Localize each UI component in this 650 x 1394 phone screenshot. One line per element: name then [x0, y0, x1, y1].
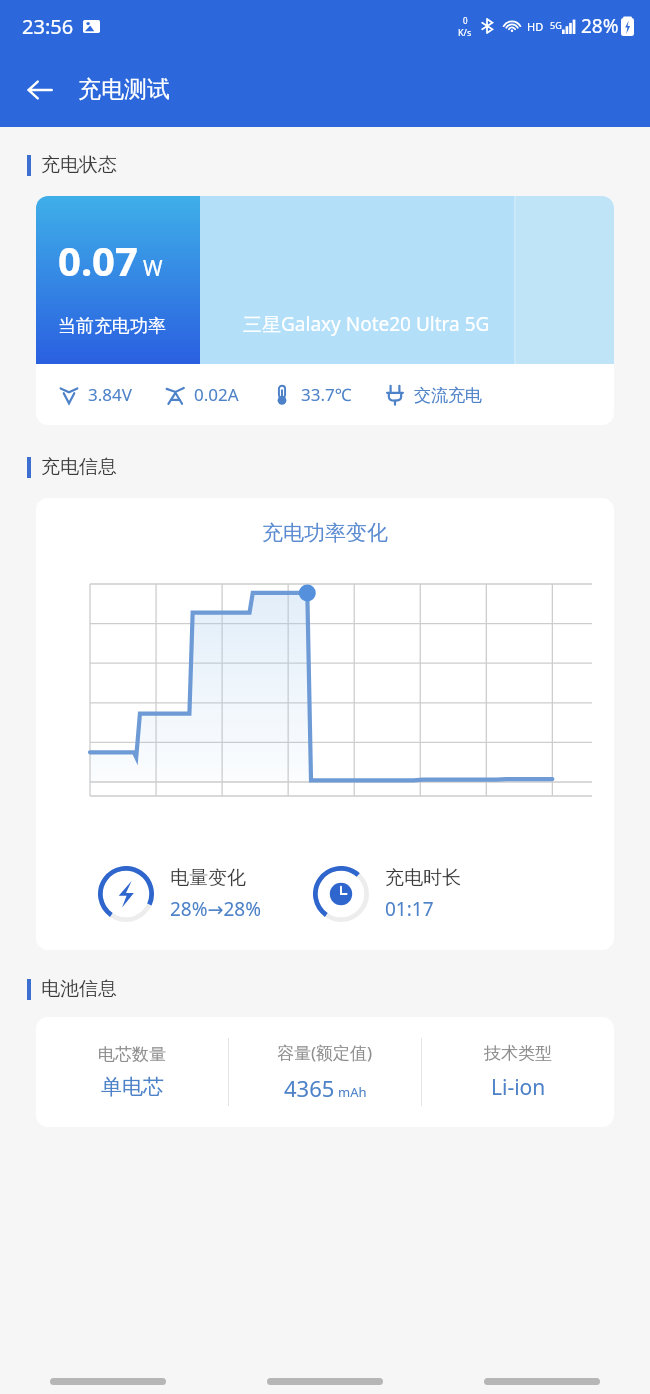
- staticText: 电芯数量: [98, 1044, 166, 1065]
- staticText: 23:56: [22, 13, 74, 40]
- button[interactable]: 导航按钮: [216, 1355, 433, 1394]
- button[interactable]: 充电时长: [313, 866, 461, 922]
- staticText: 电池信息: [41, 977, 117, 1001]
- staticText: 28%→28%: [170, 896, 261, 922]
- button[interactable]: 返回: [14, 64, 66, 116]
- staticText: W: [143, 254, 163, 283]
- staticText: 充电时长: [385, 866, 461, 890]
- staticText: 充电信息: [41, 455, 117, 479]
- staticText: 5G: [550, 19, 562, 31]
- staticText: 电量变化: [170, 866, 246, 890]
- staticText: K/s: [458, 26, 472, 38]
- staticText: 3.84V: [88, 383, 132, 406]
- staticText: 充电功率变化: [36, 520, 614, 546]
- button[interactable]: 电量变化: [98, 866, 261, 922]
- staticText: 单电芯: [101, 1074, 164, 1100]
- button[interactable]: 导航按钮: [433, 1355, 650, 1394]
- staticText: 技术类型: [484, 1043, 552, 1064]
- staticText: 容量(额定值): [277, 1041, 373, 1064]
- staticText: 充电状态: [41, 153, 117, 177]
- button[interactable]: 充电功率变化: [36, 498, 614, 950]
- staticText: HD: [527, 19, 544, 34]
- staticText: 当前充电功率: [58, 315, 166, 338]
- button[interactable]: 0.07: [36, 196, 614, 425]
- staticText: mAh: [338, 1083, 367, 1101]
- button[interactable]: 导航按钮: [0, 1355, 216, 1394]
- staticText: 交流充电: [414, 385, 482, 406]
- staticText: 28%: [581, 13, 619, 39]
- staticText: 充电测试: [78, 75, 170, 104]
- staticText: 4365: [284, 1073, 335, 1103]
- staticText: 0.02A: [194, 383, 239, 406]
- staticText: 01:17: [385, 896, 434, 922]
- staticText: 33.7℃: [301, 383, 352, 406]
- staticText: Li-ion: [491, 1073, 546, 1102]
- staticText: 三星Galaxy Note20 Ultra 5G: [243, 311, 490, 337]
- button[interactable]: 电芯数量: [36, 1017, 614, 1127]
- staticText: 0.07: [58, 233, 138, 287]
- staticText: 0: [463, 15, 468, 26]
